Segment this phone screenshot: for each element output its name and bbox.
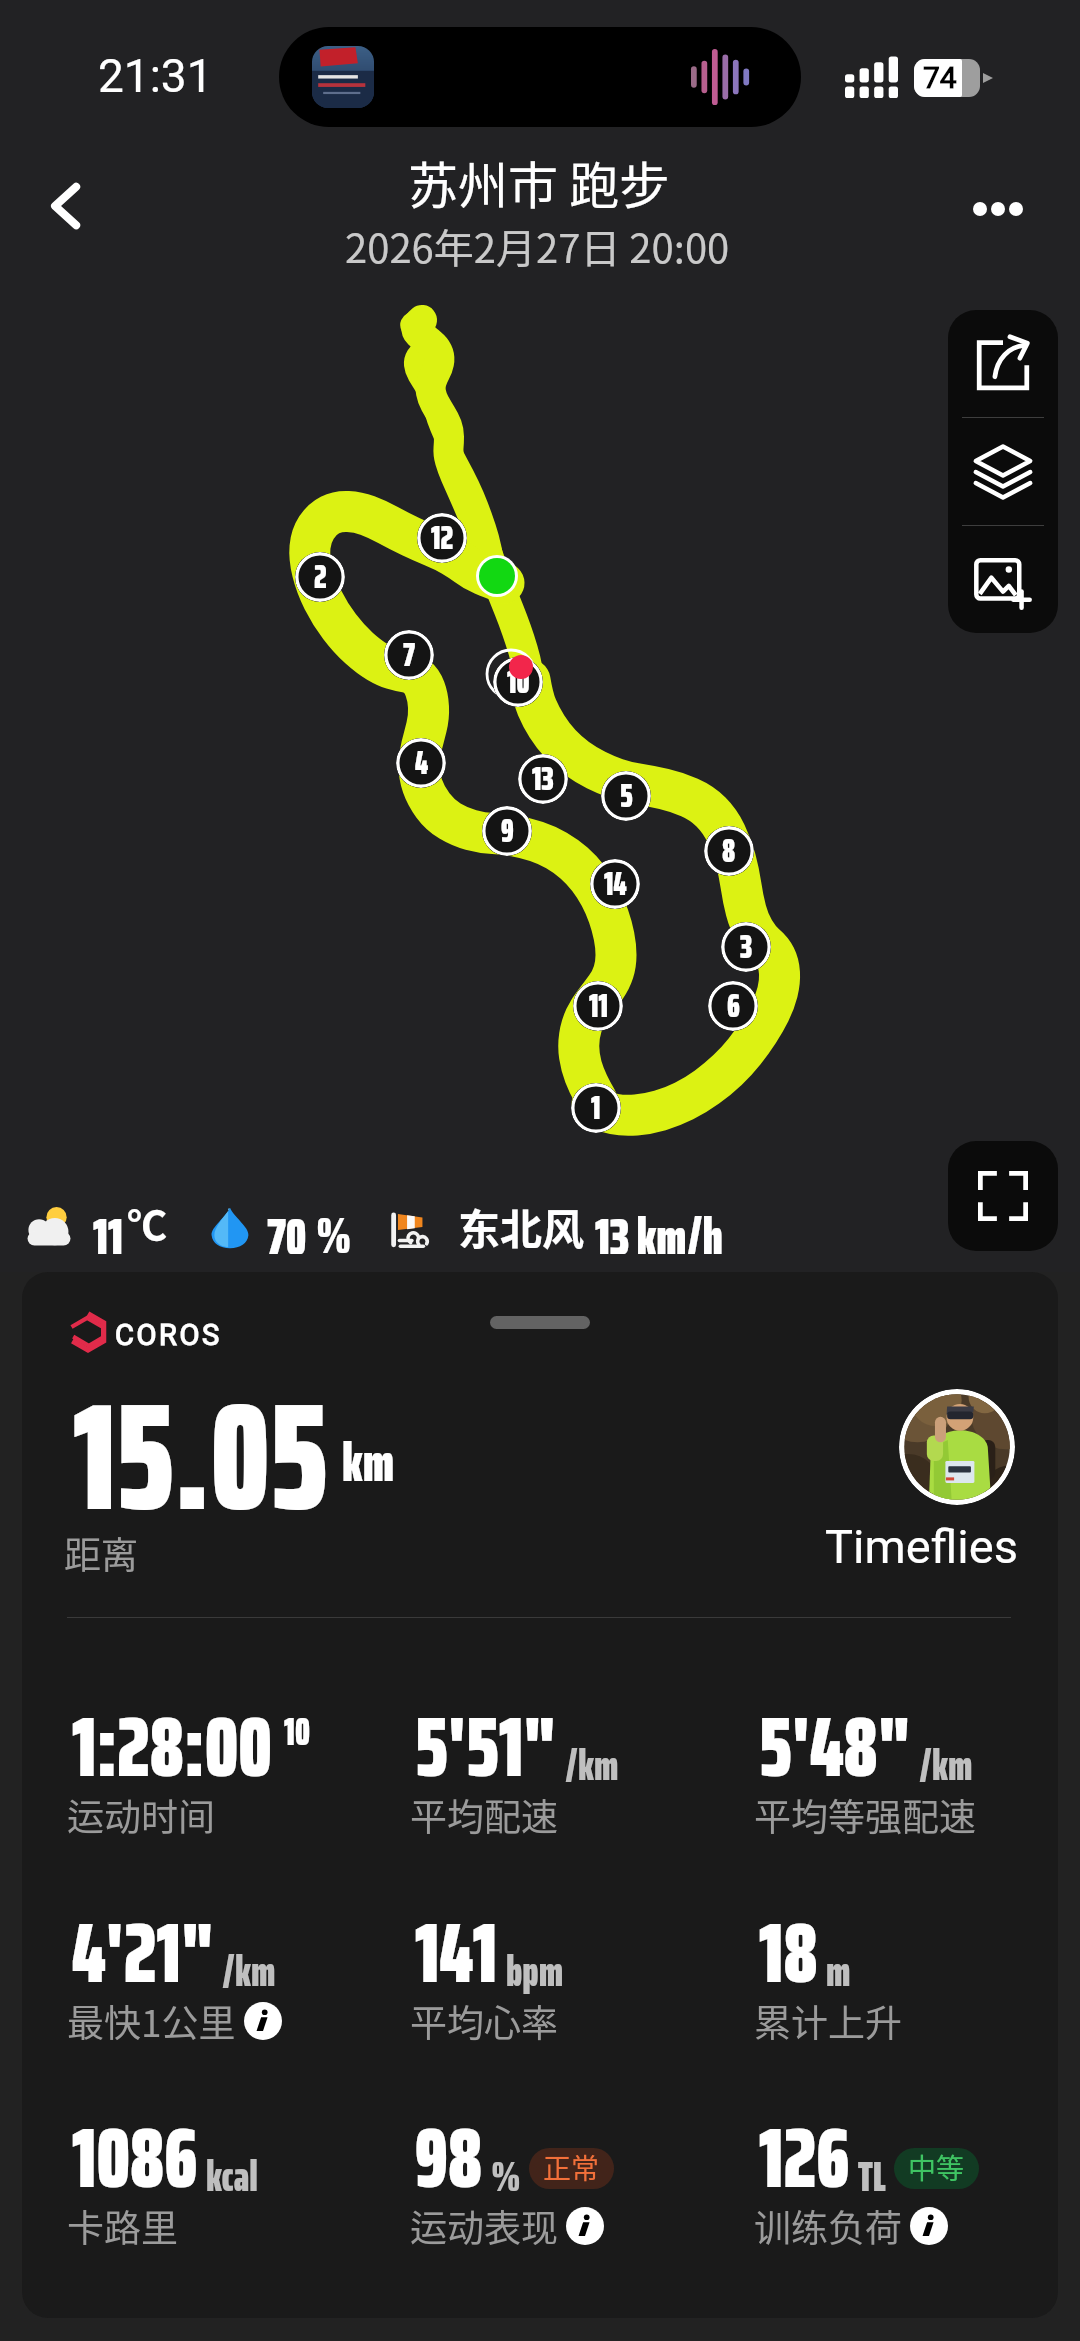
button[interactable]: Kilometer 5	[601, 771, 651, 821]
staticText: 10	[284, 1702, 310, 1762]
button[interactable]: Expand details	[450, 1301, 630, 1343]
button[interactable]: Add photo	[948, 526, 1058, 633]
staticText: 74	[923, 60, 957, 95]
staticText: TL	[858, 2143, 886, 2209]
other: More info	[566, 2207, 604, 2245]
staticText: 13 km/h	[595, 1196, 723, 1254]
staticText: 5'48"	[759, 1680, 911, 1814]
staticText: Timeflies	[825, 1519, 1018, 1574]
staticText: 平均等强配速	[754, 1788, 976, 1842]
button[interactable]: Kilometer 6	[708, 981, 758, 1031]
staticText: 累计上升	[754, 1994, 902, 2048]
button[interactable]: 18	[759, 1886, 851, 2026]
staticText: 15.05	[73, 1339, 328, 1575]
staticText: 5	[620, 771, 633, 820]
staticText: 距离	[64, 1526, 138, 1580]
staticText: 平均配速	[410, 1788, 558, 1842]
button[interactable]: Kilometer 14	[590, 859, 640, 909]
button[interactable]: Kilometer 3	[721, 922, 771, 972]
button[interactable]: Kilometer 1	[571, 1083, 621, 1133]
staticText: 卡路里	[67, 2199, 178, 2253]
button[interactable]: 运动时间	[67, 1788, 215, 1842]
staticText: 11	[589, 981, 608, 1030]
button[interactable]: 平均心率	[410, 1994, 558, 2048]
staticText: 正常	[543, 2148, 600, 2188]
staticText: 21:31	[98, 49, 213, 103]
staticText: 5'51"	[415, 1680, 557, 1814]
staticText: 1	[591, 1083, 601, 1132]
button[interactable]: 卡路里	[67, 2199, 178, 2253]
button[interactable]: 1086	[72, 2091, 258, 2231]
staticText: 98	[415, 2091, 483, 2225]
staticText: 平均心率	[410, 1994, 558, 2048]
button[interactable]: Map layers	[948, 418, 1058, 525]
staticText: 运动时间	[67, 1788, 215, 1842]
button[interactable]: Back	[24, 163, 110, 249]
staticText: /km	[222, 1938, 276, 2004]
staticText: 最快1公里	[67, 1994, 236, 2048]
button[interactable]: Kilometer 11	[573, 981, 623, 1031]
staticText: 苏州市 跑步	[408, 146, 670, 218]
staticText: 70	[267, 1196, 307, 1254]
staticText: 3	[740, 922, 753, 971]
staticText: bpm	[506, 1938, 564, 2004]
staticText: 10	[507, 657, 530, 706]
button[interactable]: 平均配速	[410, 1788, 558, 1842]
staticText: 2	[314, 552, 327, 601]
button[interactable]: Kilometer 8	[704, 826, 754, 876]
staticText: 12	[431, 513, 454, 562]
staticText: 11	[93, 1196, 123, 1254]
staticText: kcal	[206, 2143, 258, 2209]
staticText: 18	[759, 1886, 818, 2020]
staticText: 4'21"	[72, 1886, 214, 2020]
staticText: 141	[415, 1886, 498, 2020]
button[interactable]: Profile Timeflies	[899, 1389, 1015, 1505]
button[interactable]: 141	[415, 1886, 564, 2026]
staticText: 14	[604, 859, 627, 908]
staticText: 9	[501, 806, 514, 855]
staticText: /km	[565, 1732, 619, 1798]
staticText: 126	[759, 2091, 850, 2225]
staticText: 训练负荷	[754, 2199, 902, 2253]
staticText: %	[316, 1196, 352, 1254]
staticText: 1086	[72, 2091, 198, 2225]
button[interactable]: 1:28:00	[72, 1680, 310, 1820]
staticText: 6	[727, 981, 740, 1030]
button[interactable]: 运动表现	[410, 2199, 604, 2253]
button[interactable]: Kilometer 9	[482, 806, 532, 856]
button[interactable]: 平均等强配速	[754, 1788, 976, 1842]
staticText: 1:28:00	[72, 1680, 273, 1814]
button[interactable]: Kilometer 7	[384, 630, 434, 680]
button[interactable]: 5'51"	[415, 1680, 619, 1820]
staticText: m	[826, 1938, 851, 2004]
button[interactable]: Share	[948, 310, 1058, 417]
button[interactable]: 126	[759, 2091, 979, 2231]
staticText: COROS	[115, 1318, 222, 1352]
staticText: %	[491, 2143, 521, 2209]
staticText: /km	[919, 1732, 973, 1798]
staticText: 2026年2月27日 20:00	[345, 217, 730, 275]
button[interactable]: Kilometer 2	[295, 552, 345, 602]
button[interactable]: Kilometer 10	[493, 657, 543, 707]
other: More info	[244, 2002, 282, 2040]
button[interactable]: 4'21"	[72, 1886, 276, 2026]
staticText: 8	[722, 826, 736, 875]
button[interactable]: 5'48"	[759, 1680, 973, 1820]
staticText: 运动表现	[410, 2199, 558, 2253]
staticText: km	[342, 1420, 394, 1505]
button[interactable]: Kilometer 4	[396, 738, 446, 788]
button[interactable]: Kilometer 12	[417, 513, 467, 563]
staticText: 13	[532, 754, 554, 803]
button[interactable]: 最快1公里	[67, 1994, 282, 2048]
staticText: 东北风	[458, 1196, 585, 1254]
staticText: 4	[415, 738, 428, 787]
button[interactable]: 累计上升	[754, 1994, 902, 2048]
other: More info	[910, 2207, 948, 2245]
button[interactable]: 98	[415, 2091, 614, 2231]
button[interactable]: More options	[955, 166, 1041, 252]
button[interactable]: 训练负荷	[754, 2199, 948, 2253]
button[interactable]: Fullscreen	[948, 1141, 1058, 1251]
button[interactable]: Kilometer 13	[518, 754, 568, 804]
staticText: 7	[403, 630, 415, 679]
staticText: 中等	[908, 2148, 965, 2188]
